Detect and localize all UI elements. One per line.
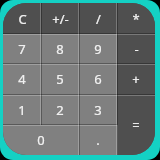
button[interactable]: +/- (41, 3, 80, 35)
staticText: 2 (56, 101, 64, 119)
staticText: 1 (18, 101, 26, 119)
staticText: 6 (94, 70, 102, 88)
button[interactable]: 6 (79, 64, 118, 96)
staticText: = (132, 116, 140, 134)
button[interactable]: 4 (3, 64, 42, 96)
staticText: C (18, 10, 27, 28)
staticText: +/- (52, 10, 69, 28)
button[interactable]: = (117, 95, 155, 155)
staticText: 8 (56, 40, 64, 58)
button[interactable]: 2 (41, 95, 80, 127)
staticText: 4 (18, 70, 26, 88)
staticText: - (134, 40, 139, 58)
button[interactable]: 9 (79, 34, 118, 66)
button[interactable]: 5 (41, 64, 80, 96)
staticText: 7 (18, 40, 26, 58)
button[interactable]: 8 (41, 34, 80, 66)
button[interactable]: 1 (3, 95, 42, 127)
button[interactable]: - (117, 34, 155, 66)
button[interactable]: 0 (3, 125, 80, 155)
button[interactable]: . (79, 125, 118, 155)
button[interactable]: 7 (3, 34, 42, 66)
button[interactable]: 3 (79, 95, 118, 127)
button[interactable]: C (3, 3, 42, 35)
staticText: / (96, 10, 101, 28)
button[interactable]: * (117, 3, 155, 35)
button[interactable]: / (79, 3, 118, 35)
staticText: 0 (37, 131, 45, 149)
staticText: 9 (94, 40, 102, 58)
staticText: 5 (56, 70, 64, 88)
staticText: . (96, 131, 100, 149)
staticText: * (132, 10, 140, 28)
staticText: 3 (94, 101, 102, 119)
button[interactable]: + (117, 64, 155, 96)
staticText: + (132, 70, 140, 88)
